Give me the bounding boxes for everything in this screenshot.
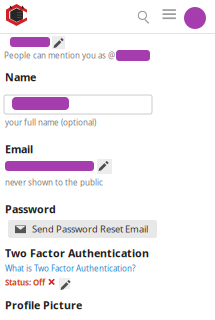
button[interactable]: Edit: [97, 159, 112, 174]
staticText: Name: [5, 70, 36, 84]
button[interactable]: Menu: [162, 8, 177, 22]
staticText: Two Factor Authentication: [5, 246, 149, 260]
staticText: What is Two Factor Authentication?: [5, 263, 135, 274]
button[interactable]: Edit: [52, 36, 65, 49]
button[interactable]: Account: [183, 7, 207, 29]
staticText: never shown to the public: [5, 177, 103, 188]
staticText: People can mention you as @: [4, 50, 115, 61]
staticText: Send Password Reset Email: [32, 223, 148, 235]
staticText: Password: [5, 202, 56, 216]
button[interactable]: Home: [5, 3, 35, 31]
button[interactable]: Send Password Reset Email: [8, 220, 157, 238]
staticText: Email: [5, 142, 33, 156]
button[interactable]: Edit: [59, 278, 70, 289]
button[interactable]: Search: [136, 9, 152, 25]
button[interactable]: What is Two Factor Authentication?: [5, 263, 135, 274]
staticText: Status: Off: [5, 277, 45, 288]
staticText: your full name (optional): [5, 117, 96, 128]
staticText: Profile Picture: [5, 298, 82, 312]
